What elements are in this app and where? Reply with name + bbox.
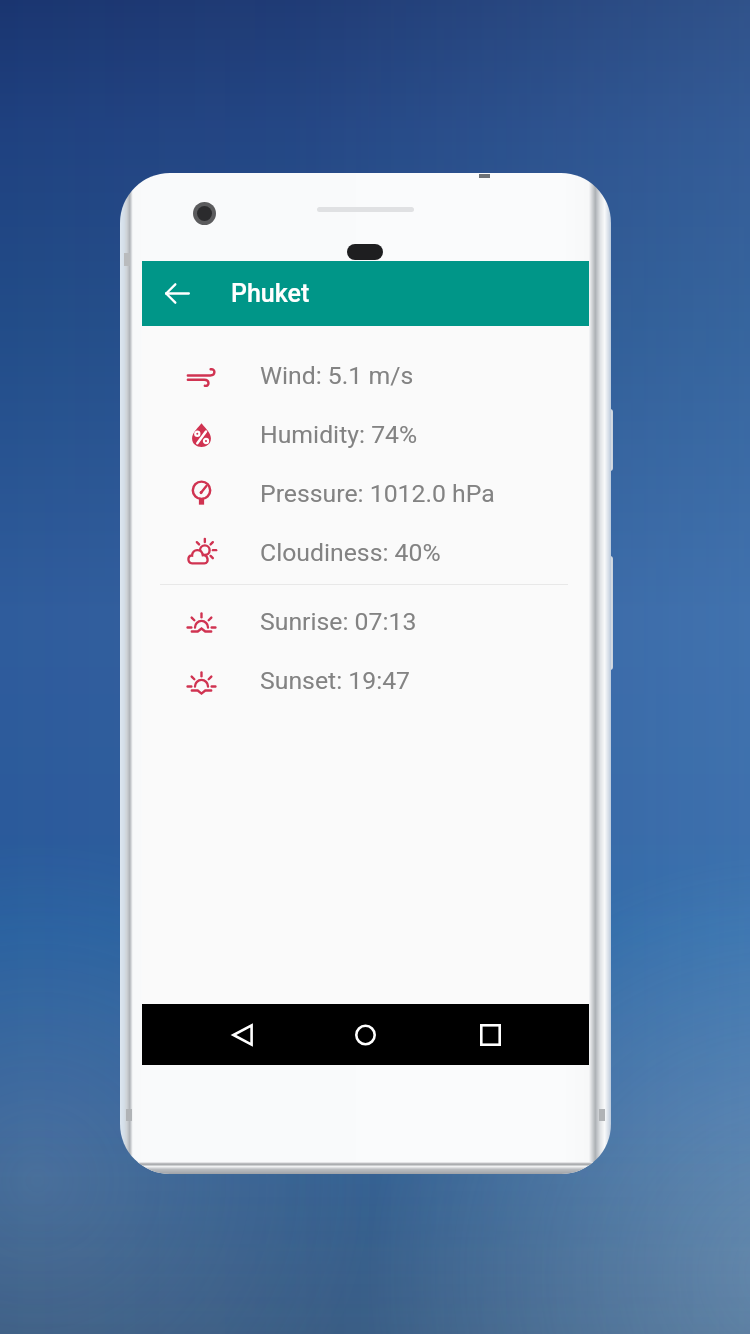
button[interactable]: Back — [218, 1004, 266, 1065]
button[interactable]: Recent apps — [466, 1004, 514, 1065]
staticText: Humidity: 74% — [260, 420, 418, 449]
button[interactable]: Sunrise: 07:13 — [142, 592, 589, 651]
button[interactable]: Pressure: 1012.0 hPa — [142, 464, 589, 523]
staticText: Sunset: 19:47 — [260, 666, 411, 695]
staticText: Sunrise: 07:13 — [260, 607, 417, 636]
staticText: Pressure: 1012.0 hPa — [260, 479, 495, 508]
button[interactable]: Navigate up — [142, 261, 212, 326]
button[interactable]: Wind: 5.1 m/s — [142, 346, 589, 405]
button[interactable]: Home — [341, 1004, 389, 1065]
button[interactable]: Sunset: 19:47 — [142, 651, 589, 710]
button[interactable]: Humidity: 74% — [142, 405, 589, 464]
staticText: Cloudiness: 40% — [260, 538, 441, 567]
staticText: Wind: 5.1 m/s — [260, 361, 414, 390]
staticText: Phuket — [231, 279, 310, 308]
button[interactable]: Cloudiness: 40% — [142, 523, 589, 582]
